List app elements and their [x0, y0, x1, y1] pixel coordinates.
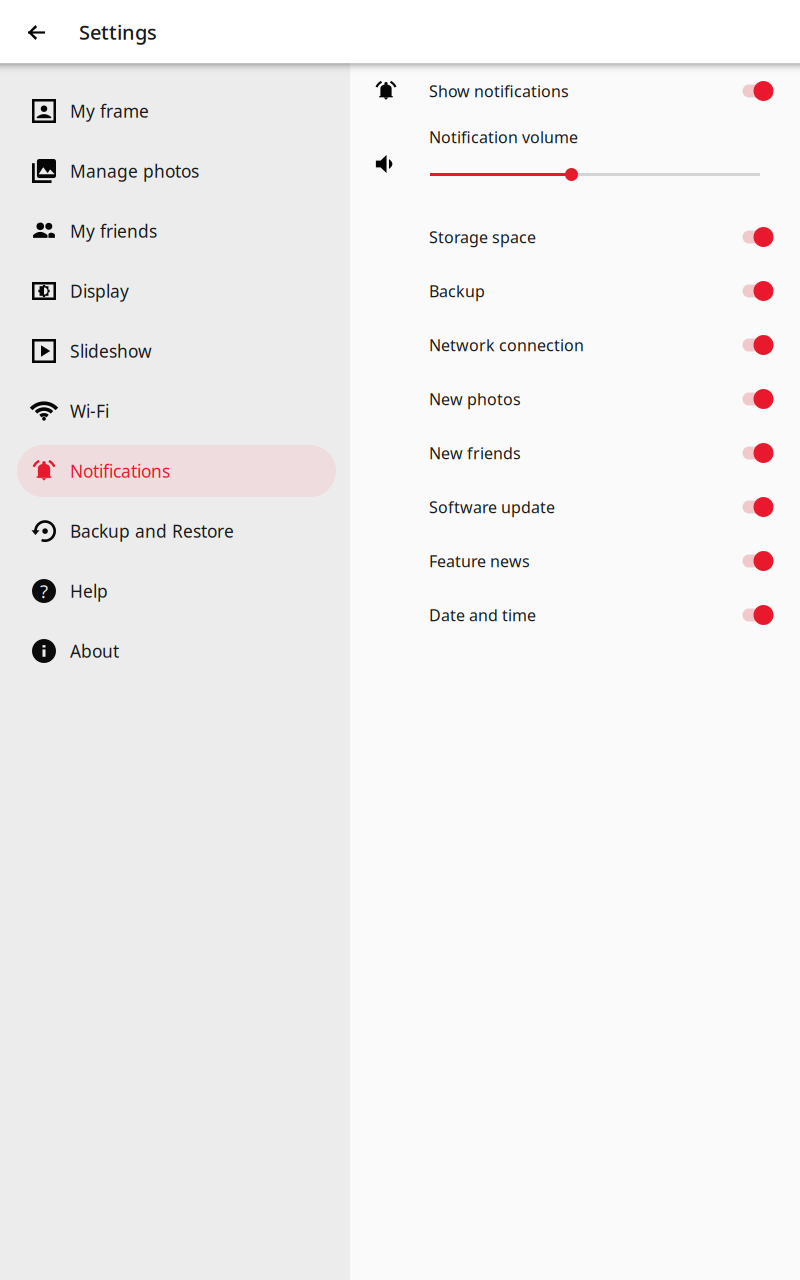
- staticText: Slideshow: [70, 339, 152, 362]
- button[interactable]: Display: [17, 265, 336, 317]
- button[interactable]: Notifications: [17, 445, 336, 497]
- button[interactable]: Feature news: [429, 534, 773, 588]
- staticText: About: [70, 639, 119, 662]
- button[interactable]: Manage photos: [17, 145, 336, 197]
- staticText: Storage space: [429, 226, 536, 248]
- button[interactable]: Storage space: [429, 210, 773, 264]
- staticText: Network connection: [429, 334, 584, 356]
- button[interactable]: New friends: [429, 426, 773, 480]
- button[interactable]: New photos: [429, 372, 773, 426]
- button[interactable]: Show notifications: [429, 64, 773, 118]
- staticText: Show notifications: [429, 80, 569, 102]
- staticText: Date and time: [429, 604, 536, 626]
- staticText: Manage photos: [70, 159, 199, 182]
- staticText: Backup and Restore: [70, 519, 234, 542]
- button[interactable]: Network connection: [429, 318, 773, 372]
- button[interactable]: ?: [17, 565, 336, 617]
- staticText: Wi-Fi: [70, 399, 109, 422]
- staticText: My frame: [70, 99, 149, 122]
- button[interactable]: My friends: [17, 205, 336, 257]
- staticText: Software update: [429, 496, 555, 518]
- staticText: Feature news: [429, 550, 530, 572]
- staticText: Notifications: [70, 459, 170, 482]
- button[interactable]: Back: [20, 16, 52, 48]
- button[interactable]: Wi-Fi: [17, 385, 336, 437]
- button[interactable]: Slideshow: [17, 325, 336, 377]
- staticText: New photos: [429, 388, 521, 410]
- staticText: Settings: [79, 19, 157, 45]
- button[interactable]: Backup and Restore: [17, 505, 336, 557]
- staticText: Display: [70, 279, 129, 302]
- button[interactable]: Date and time: [429, 588, 773, 642]
- staticText: Help: [70, 579, 108, 602]
- staticText: My friends: [70, 219, 157, 242]
- staticText: New friends: [429, 442, 521, 464]
- staticText: Backup: [429, 280, 485, 302]
- button[interactable]: Backup: [429, 264, 773, 318]
- staticText: Notification volume: [429, 126, 578, 148]
- button[interactable]: Software update: [429, 480, 773, 534]
- staticText: ?: [40, 579, 48, 603]
- button[interactable]: My frame: [17, 85, 336, 137]
- button[interactable]: About: [17, 625, 336, 677]
